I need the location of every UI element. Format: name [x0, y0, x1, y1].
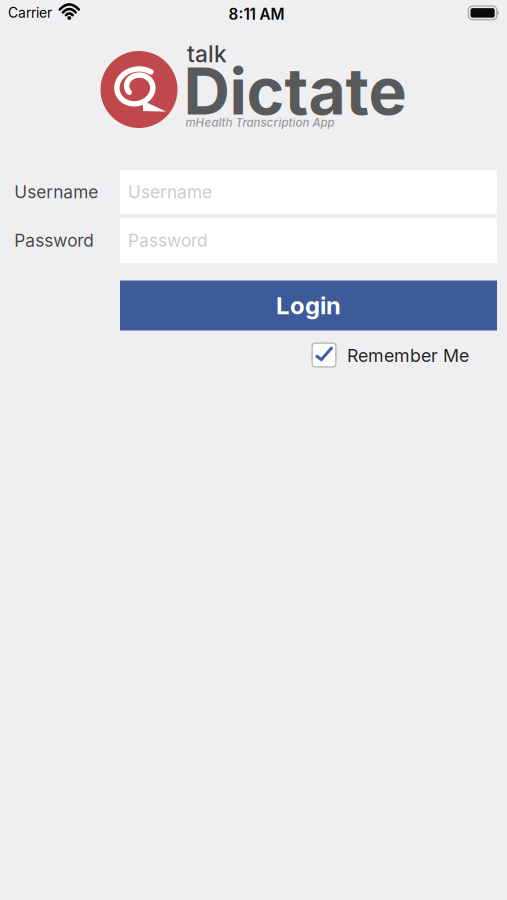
staticText: Remember Me [347, 345, 469, 366]
staticText: Password [14, 230, 94, 251]
staticText: Dictate [184, 52, 407, 130]
staticText: talk [187, 40, 227, 68]
button[interactable]: Login [120, 280, 497, 330]
staticText: Username [128, 182, 212, 202]
staticText: Password [128, 230, 208, 251]
staticText: Login [276, 291, 341, 320]
staticText: Carrier [8, 4, 52, 21]
staticText: 8:11 AM [228, 5, 284, 23]
staticText: Username [14, 182, 98, 202]
button[interactable]: Username text field [120, 170, 497, 214]
staticText: mHealth Transcription App [185, 116, 334, 129]
button[interactable]: Remember Me [312, 343, 469, 367]
button[interactable]: Password text field [120, 218, 497, 263]
